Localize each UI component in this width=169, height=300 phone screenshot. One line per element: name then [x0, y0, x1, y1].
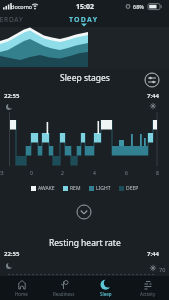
staticText: YESTERDAY	[0, 15, 24, 24]
staticText: docomo	[11, 3, 33, 10]
staticText: 68%	[133, 3, 144, 10]
button[interactable]: Home	[0, 276, 43, 300]
staticText: 2	[61, 170, 64, 177]
staticText: LIGHT	[96, 185, 111, 192]
staticText: Sleep stages	[60, 72, 110, 84]
button[interactable]	[75, 203, 93, 221]
button[interactable]: Activity	[127, 276, 169, 300]
staticText: 4	[93, 170, 96, 177]
staticText: 15:02	[76, 2, 94, 12]
staticText: Sleep	[100, 291, 112, 297]
staticText: 7:44	[147, 250, 159, 258]
staticText: 7:44	[147, 92, 159, 100]
staticText: 0	[30, 170, 33, 177]
button[interactable]: Readiness	[43, 276, 85, 300]
staticText: REM	[70, 185, 81, 192]
staticText: 8	[156, 170, 159, 177]
staticText: 22:55	[4, 92, 20, 100]
staticText: AWAKE	[38, 185, 55, 192]
staticText: Readiness	[53, 291, 75, 297]
staticText: TODAY	[69, 15, 99, 25]
staticText: 23	[0, 170, 4, 177]
staticText: Home	[15, 291, 28, 297]
staticText: Resting heart rate	[49, 237, 121, 249]
staticText: 6	[125, 170, 128, 177]
button[interactable]: TODAY	[44, 13, 124, 27]
button[interactable]: Sleep	[85, 276, 127, 300]
button[interactable]	[143, 71, 161, 89]
staticText: DEEP	[126, 185, 139, 192]
staticText: 70	[159, 266, 166, 273]
staticText: Activity	[140, 291, 156, 297]
staticText: 22:55	[4, 250, 20, 258]
